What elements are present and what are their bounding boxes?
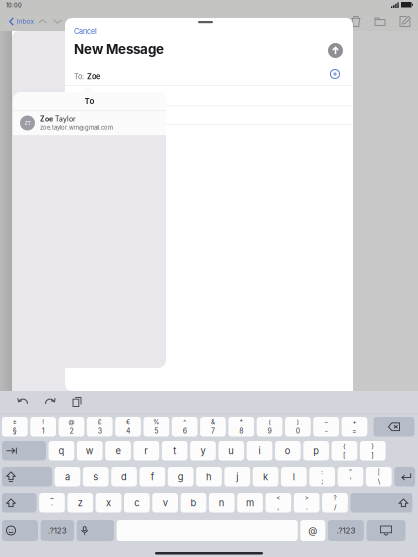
button[interactable]: c	[124, 493, 150, 512]
staticText: y	[200, 445, 205, 456]
button[interactable]: Previous message	[34, 12, 51, 31]
button[interactable]: "	[338, 467, 363, 486]
button[interactable]: f	[139, 467, 165, 486]
button[interactable]: @	[59, 417, 84, 436]
button[interactable]: {	[332, 441, 357, 460]
button[interactable]: *	[228, 417, 254, 436]
staticText: 0	[296, 427, 300, 435]
button[interactable]: Caps lock	[2, 467, 52, 486]
staticText: /	[334, 503, 336, 511]
staticText: x	[106, 497, 111, 508]
button[interactable]: p	[303, 441, 329, 460]
button[interactable]: ?	[322, 493, 348, 512]
staticText: ^	[183, 418, 186, 426]
staticText: .?123	[48, 526, 67, 535]
button[interactable]: )	[285, 417, 311, 436]
staticText: \	[378, 477, 380, 485]
button[interactable]: l	[281, 467, 307, 486]
button[interactable]: Cancel	[69, 24, 102, 39]
button[interactable]: m	[237, 493, 263, 512]
button[interactable]: ZT	[13, 110, 166, 135]
button[interactable]: Redo	[41, 394, 59, 410]
button[interactable]: &	[200, 417, 226, 436]
button[interactable]: Delete	[373, 417, 414, 436]
button[interactable]: o	[275, 441, 301, 460]
button[interactable]: (	[257, 417, 282, 436]
button[interactable]: ^	[172, 417, 197, 436]
button[interactable]: .?123	[41, 520, 74, 541]
button[interactable]: @	[300, 520, 325, 541]
button[interactable]: <	[265, 493, 291, 512]
staticText: i	[259, 445, 261, 456]
button[interactable]: £	[87, 417, 113, 436]
button[interactable]: r	[133, 441, 159, 460]
staticText: §	[13, 427, 17, 435]
button[interactable]: Paste	[68, 394, 86, 410]
staticText: -	[325, 427, 328, 435]
staticText: 3	[98, 427, 102, 435]
staticText: <	[276, 494, 280, 502]
button[interactable]: Hide keyboard	[366, 520, 405, 541]
staticText: ±	[13, 418, 17, 426]
button[interactable]: Add recipient	[329, 68, 341, 80]
button[interactable]: t	[162, 441, 187, 460]
button[interactable]: ±	[2, 417, 28, 436]
staticText: ~	[50, 494, 54, 502]
button[interactable]: :	[309, 467, 335, 486]
button[interactable]: >	[294, 493, 319, 512]
button[interactable]: Dictation	[77, 520, 114, 541]
staticText: 10:00	[6, 2, 22, 9]
staticText: .	[306, 503, 308, 511]
button[interactable]: Shift	[2, 493, 36, 512]
staticText: 2	[69, 427, 73, 435]
button[interactable]: q	[49, 441, 74, 460]
button[interactable]: a	[55, 467, 80, 486]
button[interactable]: y	[190, 441, 216, 460]
button[interactable]: |	[366, 467, 392, 486]
staticText: r	[144, 445, 148, 456]
button[interactable]: s	[83, 467, 109, 486]
button[interactable]: b	[181, 493, 206, 512]
button[interactable]: n	[209, 493, 235, 512]
button[interactable]: w	[77, 441, 103, 460]
button[interactable]: !	[30, 417, 56, 436]
button[interactable]: Delete	[347, 12, 365, 31]
button[interactable]: Return	[394, 467, 415, 486]
button[interactable]: j	[224, 467, 250, 486]
button[interactable]: %	[143, 417, 169, 436]
staticText: =	[352, 427, 357, 435]
button[interactable]: e	[105, 441, 131, 460]
button[interactable]: Emoji	[2, 520, 38, 541]
button[interactable]: v	[152, 493, 178, 512]
button[interactable]: g	[168, 467, 193, 486]
button[interactable]: Inbox	[6, 12, 36, 31]
staticText: +	[352, 418, 356, 426]
button[interactable]: –	[313, 417, 339, 436]
button[interactable]: Shift	[350, 493, 412, 512]
button[interactable]: x	[96, 493, 121, 512]
button[interactable]: ~	[39, 493, 65, 512]
button[interactable]: Move to folder	[371, 12, 389, 31]
button[interactable]: i	[247, 441, 272, 460]
staticText: }	[371, 442, 374, 450]
staticText: 9	[268, 427, 272, 435]
staticText: n	[219, 497, 225, 508]
button[interactable]: d	[111, 467, 137, 486]
staticText: e	[115, 445, 120, 456]
button[interactable]: +	[342, 417, 367, 436]
button[interactable]: Tab	[2, 441, 46, 460]
staticText: ,	[277, 503, 279, 511]
button[interactable]: z	[67, 493, 93, 512]
button[interactable]: .?123	[328, 520, 364, 541]
staticText: g	[178, 471, 184, 482]
button[interactable]: New message	[396, 12, 414, 31]
button[interactable]: h	[196, 467, 222, 486]
button[interactable]: Undo	[14, 394, 32, 410]
button[interactable]: u	[218, 441, 244, 460]
staticText: ZT	[24, 120, 30, 126]
button[interactable]: }	[360, 441, 386, 460]
button[interactable]: €	[115, 417, 141, 436]
button[interactable]: k	[253, 467, 278, 486]
button[interactable]: Next message	[49, 12, 66, 31]
